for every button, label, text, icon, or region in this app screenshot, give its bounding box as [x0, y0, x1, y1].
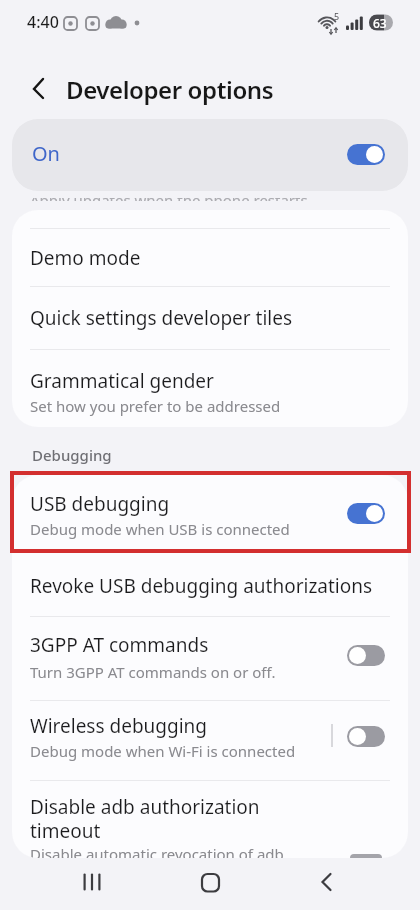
staticText: Developer options	[66, 73, 274, 106]
button[interactable]	[347, 726, 385, 747]
button[interactable]	[347, 645, 385, 666]
button[interactable]	[12, 700, 408, 780]
button[interactable]	[12, 228, 408, 286]
staticText: Revoke USB debugging authorizations	[30, 573, 373, 599]
button[interactable]	[295, 860, 359, 904]
button[interactable]	[12, 228, 408, 286]
staticText: 4:40	[27, 11, 59, 33]
staticText: Debug mode when Wi-Fi is connected	[30, 741, 296, 761]
staticText: Quick settings developer tiles	[30, 305, 293, 331]
staticText: Disable automatic revocation of adb	[30, 844, 284, 858]
button[interactable]	[12, 780, 408, 858]
button[interactable]	[60, 860, 124, 904]
staticText: 3GPP AT commands	[30, 632, 209, 658]
button[interactable]	[12, 286, 408, 349]
button[interactable]	[178, 860, 242, 904]
staticText: USB debugging	[30, 491, 170, 517]
button[interactable]	[12, 557, 408, 616]
button[interactable]	[24, 71, 60, 107]
staticText: Apply updates when the phone restarts.	[30, 198, 312, 201]
button[interactable]	[347, 144, 385, 165]
staticText: Demo mode	[30, 245, 141, 271]
button[interactable]	[12, 616, 408, 700]
staticText: Debugging	[32, 445, 112, 465]
staticText: timeout	[30, 818, 101, 844]
button[interactable]	[12, 475, 408, 557]
staticText: 5	[334, 10, 340, 22]
staticText: Wireless debugging	[30, 713, 208, 739]
staticText: Disable adb authorization	[30, 794, 260, 820]
staticText: Set how you prefer to be addressed	[30, 396, 281, 416]
button[interactable]	[12, 349, 408, 427]
button[interactable]: On	[12, 119, 408, 191]
staticText: Grammatical gender	[30, 368, 214, 394]
button[interactable]	[347, 503, 385, 524]
staticText: On	[32, 140, 60, 167]
staticText: Turn 3GPP AT commands on or off.	[30, 662, 276, 682]
staticText: Debug mode when USB is connected	[30, 519, 290, 539]
staticText: 63	[373, 15, 387, 31]
